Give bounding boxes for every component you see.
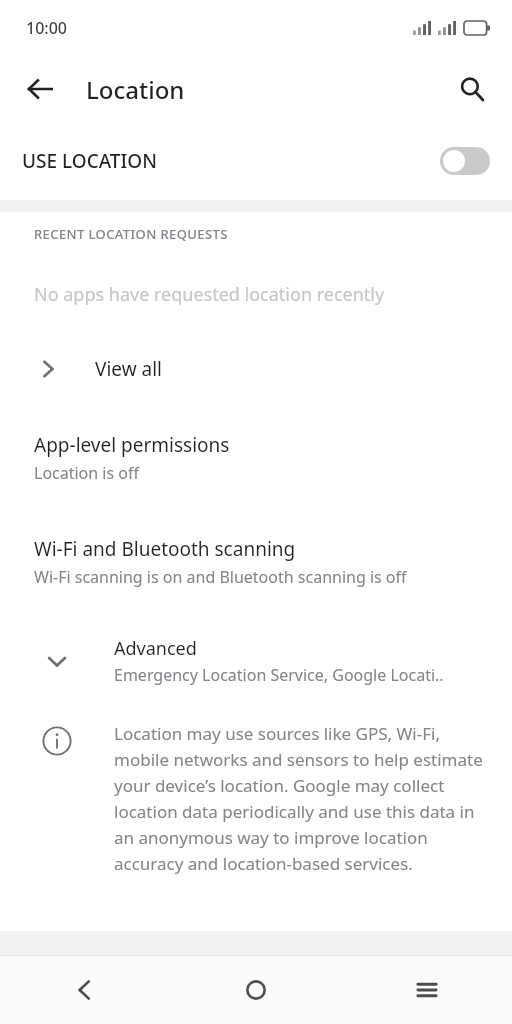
button[interactable]: Home <box>170 956 341 1024</box>
staticText: Location may use sources like GPS, Wi-Fi… <box>114 722 486 875</box>
button[interactable]: Back <box>0 956 170 1024</box>
staticText: Wi-Fi and Bluetooth scanning <box>34 536 296 562</box>
staticText: Location is off <box>34 462 139 484</box>
staticText: 10:00 <box>26 17 67 39</box>
button[interactable]: App-level permissions <box>0 406 512 510</box>
staticText: USE LOCATION <box>22 148 157 174</box>
button[interactable]: View all <box>0 332 512 406</box>
button[interactable]: Wi-Fi and Bluetooth scanning <box>0 510 512 614</box>
staticText: View all <box>95 356 162 382</box>
staticText: Location <box>86 73 185 106</box>
staticText: Emergency Location Service, Google Locat… <box>114 664 444 686</box>
button[interactable]: Advanced <box>0 614 512 708</box>
button[interactable]: Recent apps <box>341 956 512 1024</box>
staticText: RECENT LOCATION REQUESTS <box>34 225 228 243</box>
staticText: Advanced <box>114 636 197 661</box>
staticText: Wi-Fi scanning is on and Bluetooth scann… <box>34 566 407 588</box>
staticText: App-level permissions <box>34 432 230 458</box>
staticText: No apps have requested location recently <box>34 282 385 307</box>
button[interactable]: Back <box>14 63 66 115</box>
button[interactable]: USE LOCATION <box>0 122 512 200</box>
button[interactable]: Search <box>446 63 498 115</box>
